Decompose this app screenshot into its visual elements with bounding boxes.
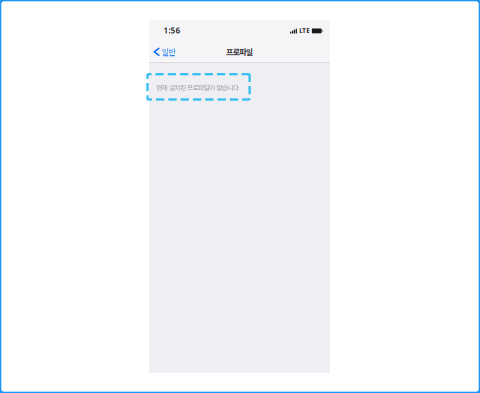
staticText: 프로파일 <box>226 46 253 58</box>
staticText: 일반 <box>162 46 175 58</box>
staticText: 현재 설치된 프로파일이 없습니다 <box>156 85 239 91</box>
staticText: LTE <box>299 27 309 35</box>
staticText: 1:56 <box>163 25 180 36</box>
button[interactable]: 일반으로 돌아가기 <box>149 43 179 61</box>
